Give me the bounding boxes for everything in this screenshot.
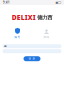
staticText: 登 录 (28, 57, 35, 60)
staticText: 德力西 (37, 14, 52, 21)
button[interactable]: 扫码 (32, 28, 61, 39)
staticText: 9:41 (3, 1, 10, 4)
staticText: 扫码 (43, 35, 49, 39)
button[interactable]: 登 录 (23, 56, 40, 61)
staticText: 账号 (14, 35, 20, 39)
staticText: DELIXI (12, 13, 36, 22)
staticText: ▮▮ (55, 1, 57, 4)
button[interactable]: 账号 (3, 28, 32, 39)
